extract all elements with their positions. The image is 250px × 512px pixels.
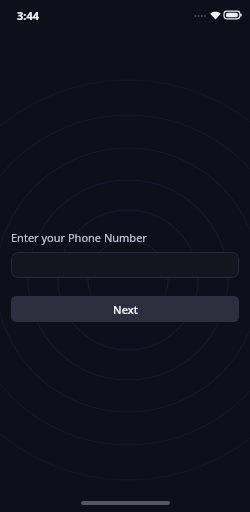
button[interactable]: Next — [11, 296, 239, 322]
staticText: 3:44 — [17, 8, 39, 23]
button[interactable] — [11, 252, 239, 278]
staticText: Next — [113, 302, 138, 317]
staticText: Enter your Phone Number — [11, 230, 147, 245]
